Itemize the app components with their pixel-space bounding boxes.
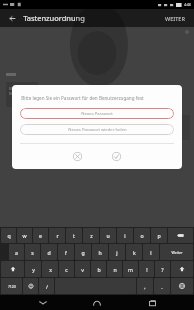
button[interactable]: .	[154, 278, 170, 294]
button[interactable]: j	[109, 244, 125, 260]
button[interactable]: a	[9, 244, 24, 260]
button[interactable]: r	[49, 228, 65, 243]
button[interactable]: t	[66, 228, 82, 243]
button[interactable]: q	[1, 228, 16, 243]
button[interactable]: WEITER	[163, 13, 187, 24]
staticText: ?123	[8, 284, 16, 289]
button[interactable]	[1, 261, 24, 277]
staticText: Neues Passwort wieder holen	[68, 127, 127, 133]
staticText: l	[150, 249, 152, 256]
staticText: x	[49, 266, 52, 273]
staticText: w	[22, 232, 27, 239]
button[interactable]: x	[42, 261, 58, 277]
staticText: u	[106, 232, 110, 239]
button[interactable]: Confirm	[110, 150, 123, 163]
staticText: ,	[144, 283, 146, 290]
button[interactable]: d	[41, 244, 57, 260]
staticText: 4:44	[184, 3, 191, 7]
button[interactable]: Weiter	[160, 244, 193, 260]
staticText: y	[32, 266, 35, 273]
button[interactable]: Neues Passwort	[20, 108, 174, 119]
button[interactable]: g	[75, 244, 91, 260]
button[interactable]: Neues Passwort wieder holen	[20, 124, 174, 135]
button[interactable]: s	[25, 244, 40, 260]
button[interactable]: c	[59, 261, 74, 277]
staticText: Weiter	[171, 250, 183, 255]
staticText: k	[133, 249, 136, 256]
staticText: r	[56, 232, 59, 239]
staticText: o	[140, 232, 144, 239]
staticText: WEITER	[165, 15, 185, 22]
button[interactable]: ,	[137, 278, 153, 294]
staticText: ☺	[28, 283, 34, 289]
button[interactable]: e	[33, 228, 48, 243]
button[interactable]	[168, 228, 193, 243]
staticText: e	[39, 232, 42, 239]
staticText: s	[31, 249, 34, 256]
staticText: g	[81, 249, 85, 256]
button[interactable]: /	[39, 278, 54, 294]
staticText: c	[65, 266, 68, 273]
button[interactable]: !	[139, 261, 154, 277]
staticText: m	[128, 266, 133, 273]
button[interactable]: h	[92, 244, 108, 260]
button[interactable]: Back	[31, 295, 55, 310]
button[interactable]: w	[17, 228, 32, 243]
button[interactable]: Cancel	[71, 150, 84, 163]
button[interactable]: b	[91, 261, 106, 277]
staticText: d	[47, 249, 51, 256]
button[interactable]: o	[134, 228, 150, 243]
button[interactable]: u	[100, 228, 116, 243]
button[interactable]: i	[117, 228, 133, 243]
button[interactable]: m	[123, 261, 138, 277]
staticText: .	[161, 283, 163, 290]
staticText: f	[65, 249, 67, 256]
staticText: b	[97, 266, 101, 273]
staticText: p	[157, 232, 161, 239]
button[interactable]	[171, 278, 193, 294]
staticText: ?	[161, 266, 164, 273]
staticText: h	[98, 249, 102, 256]
staticText: Tastenzuordnung	[23, 13, 85, 23]
staticText: q	[7, 232, 11, 239]
staticText: v	[81, 266, 84, 273]
button[interactable]: p	[151, 228, 167, 243]
button[interactable]: l	[143, 244, 159, 260]
button[interactable]: Back	[7, 13, 18, 24]
button[interactable]: Home	[85, 295, 109, 310]
button[interactable]: k	[126, 244, 142, 260]
staticText: Neues Passwort	[81, 111, 113, 117]
button[interactable]: z	[83, 228, 99, 243]
button[interactable]: y	[25, 261, 41, 277]
button[interactable]: ?	[155, 261, 170, 277]
staticText: /	[46, 283, 48, 290]
button[interactable]	[171, 261, 193, 277]
staticText: j	[116, 249, 118, 256]
button[interactable]: ☺	[23, 278, 38, 294]
button[interactable]: Recents	[140, 295, 164, 310]
button[interactable]: f	[58, 244, 74, 260]
staticText: Bitte legen Sie ein Passwort für den Ben…	[21, 95, 144, 101]
staticText: t	[73, 232, 75, 239]
button[interactable]: ?123	[1, 278, 22, 294]
button[interactable]: v	[75, 261, 90, 277]
staticText: a	[15, 249, 18, 256]
staticText: z	[90, 232, 93, 239]
staticText: i	[124, 232, 126, 239]
staticText: !	[146, 266, 148, 273]
staticText: n	[113, 266, 117, 273]
button[interactable]: n	[107, 261, 122, 277]
